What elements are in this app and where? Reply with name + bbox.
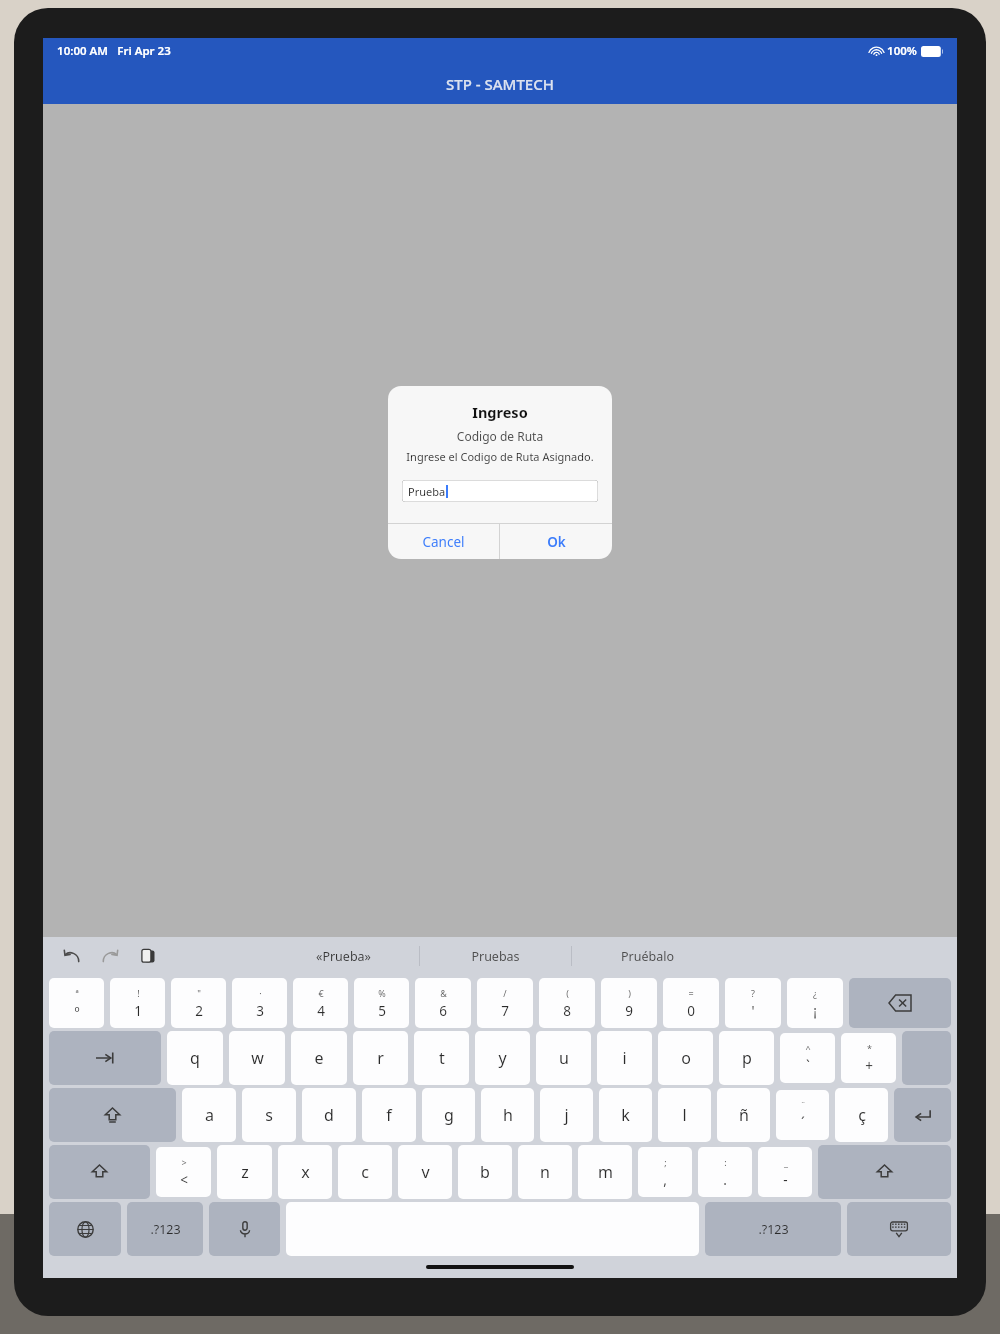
button[interactable]: m xyxy=(578,1145,632,1199)
button[interactable]: Pruébalo xyxy=(572,937,723,975)
staticText: / xyxy=(503,987,507,999)
button[interactable]: n xyxy=(518,1145,572,1199)
button[interactable]: Shift xyxy=(49,1145,150,1199)
button[interactable]: Dictation xyxy=(209,1202,280,1256)
button[interactable]: ? xyxy=(725,978,781,1028)
button[interactable]: b xyxy=(458,1145,512,1199)
staticText: ( xyxy=(566,987,569,999)
staticText: , xyxy=(663,1171,667,1189)
button[interactable]: ñ xyxy=(717,1088,770,1142)
button[interactable]: _ xyxy=(758,1147,812,1197)
staticText: q xyxy=(190,1047,200,1069)
button[interactable]: g xyxy=(422,1088,475,1142)
staticText: ´ xyxy=(801,1114,805,1132)
button[interactable]: d xyxy=(302,1088,356,1142)
staticText: > xyxy=(181,1156,187,1168)
staticText: 100% xyxy=(887,43,917,59)
staticText: u xyxy=(559,1047,569,1069)
staticText: = xyxy=(688,987,694,999)
button[interactable]: ) xyxy=(601,978,657,1028)
staticText: < xyxy=(180,1171,188,1189)
button[interactable]: ç xyxy=(835,1088,888,1142)
button[interactable]: j xyxy=(540,1088,593,1142)
button[interactable]: t xyxy=(414,1031,469,1085)
button[interactable]: a xyxy=(182,1088,236,1142)
button[interactable]: s xyxy=(242,1088,296,1142)
staticText: v xyxy=(421,1161,430,1183)
staticText: ¨ xyxy=(800,1099,806,1111)
staticText: ñ xyxy=(739,1104,749,1126)
button[interactable]: .?123 xyxy=(705,1202,841,1256)
button[interactable]: Redo xyxy=(95,941,125,971)
staticText: m xyxy=(598,1161,613,1183)
button[interactable]: : xyxy=(698,1147,752,1197)
button[interactable]: Change keyboard xyxy=(49,1202,121,1256)
button[interactable]: h xyxy=(481,1088,534,1142)
button[interactable]: Backspace xyxy=(849,978,951,1028)
staticText: n xyxy=(540,1161,550,1183)
button[interactable]: q xyxy=(167,1031,223,1085)
button[interactable]: .?123 xyxy=(127,1202,203,1256)
button[interactable]: Pruebas xyxy=(420,937,571,975)
staticText: .?123 xyxy=(150,1221,181,1238)
button[interactable]: ¨ xyxy=(776,1090,829,1140)
button[interactable]: ª xyxy=(49,978,104,1028)
staticText: - xyxy=(783,1171,788,1189)
staticText: h xyxy=(503,1104,513,1126)
button[interactable]: Tab xyxy=(49,1031,161,1085)
staticText: Cancel xyxy=(422,533,465,551)
button[interactable]: r xyxy=(353,1031,408,1085)
button[interactable]: / xyxy=(477,978,533,1028)
button[interactable]: y xyxy=(475,1031,530,1085)
button[interactable]: " xyxy=(171,978,226,1028)
button[interactable]: * xyxy=(841,1033,896,1083)
button[interactable]: Hide keyboard xyxy=(847,1202,951,1256)
button[interactable]: e xyxy=(291,1031,347,1085)
staticText: Fri Apr 23 xyxy=(117,43,171,59)
button[interactable]: l xyxy=(658,1088,711,1142)
button[interactable]: Undo xyxy=(57,941,87,971)
button[interactable]: ( xyxy=(539,978,595,1028)
button[interactable]: € xyxy=(293,978,348,1028)
button[interactable]: «Prueba» xyxy=(268,937,419,975)
button[interactable]: · xyxy=(232,978,287,1028)
button[interactable]: c xyxy=(338,1145,392,1199)
button[interactable]: > xyxy=(156,1147,211,1197)
button[interactable]: f xyxy=(362,1088,416,1142)
button[interactable]: w xyxy=(229,1031,285,1085)
button[interactable]: Return xyxy=(894,1088,951,1142)
button[interactable]: = xyxy=(663,978,719,1028)
button[interactable]: Caps lock xyxy=(49,1088,176,1142)
button[interactable]: o xyxy=(658,1031,713,1085)
button[interactable]: Ok xyxy=(500,524,612,559)
button[interactable]: v xyxy=(398,1145,452,1199)
button[interactable]: ! xyxy=(110,978,165,1028)
staticText: c xyxy=(361,1161,369,1183)
staticText: 1 xyxy=(134,1002,142,1020)
button[interactable]: Shift xyxy=(818,1145,951,1199)
staticText: d xyxy=(324,1104,334,1126)
button[interactable]: z xyxy=(217,1145,272,1199)
button[interactable]: Paste xyxy=(133,941,163,971)
button[interactable]: k xyxy=(599,1088,652,1142)
staticText: 4 xyxy=(317,1002,325,1020)
button[interactable]: & xyxy=(415,978,471,1028)
staticText: 3 xyxy=(256,1002,264,1020)
button[interactable]: ^ xyxy=(780,1033,835,1083)
button[interactable]: x xyxy=(278,1145,332,1199)
button[interactable]: Cancel xyxy=(388,524,499,559)
staticText: Prueba xyxy=(408,484,446,499)
staticText: b xyxy=(480,1161,490,1183)
staticText: 2 xyxy=(195,1002,203,1020)
staticText: 9 xyxy=(625,1002,633,1020)
button[interactable]: ; xyxy=(638,1147,692,1197)
button[interactable]: i xyxy=(597,1031,652,1085)
button[interactable]: Prueba xyxy=(402,480,598,502)
button[interactable]: ¿ xyxy=(787,978,843,1028)
button[interactable]: p xyxy=(719,1031,774,1085)
button[interactable]: % xyxy=(354,978,409,1028)
button[interactable]: u xyxy=(536,1031,591,1085)
staticText: Ok xyxy=(547,533,566,551)
